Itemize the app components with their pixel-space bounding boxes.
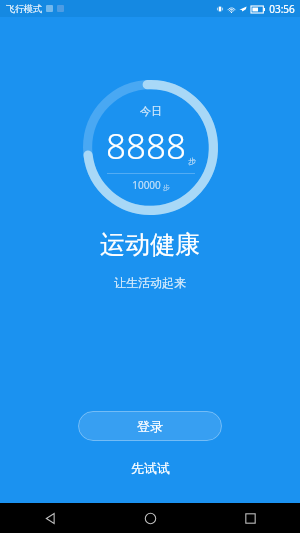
button[interactable]: 先试试 <box>113 455 188 481</box>
button[interactable]: 登录 <box>78 411 222 441</box>
staticText: 8888 <box>106 122 186 170</box>
button[interactable]: Recents <box>200 503 300 533</box>
button[interactable]: Home <box>100 503 200 533</box>
staticText: 10000 <box>132 178 161 192</box>
staticText: 今日 <box>140 104 162 118</box>
staticText: 03:56 <box>269 2 295 16</box>
staticText: 登录 <box>137 418 163 434</box>
staticText: 飞行模式 <box>6 3 42 14</box>
staticText: 步 <box>188 156 196 166</box>
staticText: 运动健康 <box>100 229 200 260</box>
staticText: 先试试 <box>131 460 170 476</box>
staticText: 步 <box>163 183 170 192</box>
staticText: 让生活动起来 <box>114 275 186 290</box>
button[interactable]: Back <box>0 503 100 533</box>
